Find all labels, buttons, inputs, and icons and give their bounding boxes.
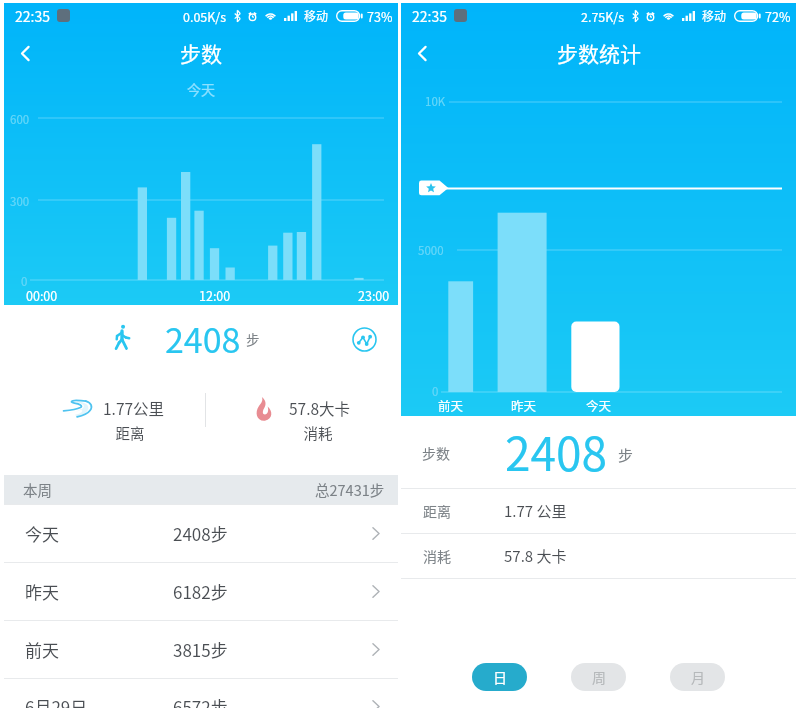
staticText: 2408: [505, 418, 608, 485]
staticText: 6月29日: [25, 694, 88, 708]
staticText: 1.77 公里: [504, 500, 567, 522]
button[interactable]: 今天: [4, 505, 398, 563]
button[interactable]: Back: [4, 29, 52, 77]
button[interactable]: 前天: [4, 621, 398, 679]
staticText: 2.75K/s: [581, 7, 625, 25]
staticText: 总27431步: [315, 479, 385, 500]
staticText: 步: [618, 444, 634, 466]
staticText: 消耗: [252, 422, 384, 443]
staticText: 00:00: [26, 286, 58, 304]
staticText: 前天: [25, 637, 59, 662]
staticText: 今天: [586, 396, 612, 414]
staticText: 本周: [23, 479, 52, 500]
staticText: 3815步: [173, 637, 228, 662]
staticText: 10K: [425, 93, 446, 110]
staticText: 距离: [423, 501, 451, 521]
staticText: 月: [691, 667, 705, 687]
staticText: 0: [21, 273, 28, 290]
button[interactable]: 月: [670, 663, 725, 691]
staticText: 0: [432, 383, 439, 400]
staticText: 步: [246, 329, 260, 349]
staticText: 2408步: [173, 521, 228, 546]
staticText: 前天: [438, 396, 464, 414]
staticText: 今天: [25, 521, 59, 546]
staticText: 6182步: [173, 579, 228, 604]
button[interactable]: Statistics: [343, 318, 385, 360]
staticText: 2408: [165, 314, 241, 363]
staticText: 日: [493, 667, 507, 687]
staticText: 今天: [4, 79, 398, 99]
staticText: 73%: [367, 7, 393, 25]
staticText: 昨天: [25, 579, 59, 604]
staticText: 1.77公里: [103, 397, 165, 419]
staticText: 57.8大卡: [289, 397, 351, 419]
staticText: 移动: [702, 7, 727, 24]
staticText: 57.8 大卡: [504, 545, 567, 567]
staticText: 步数: [422, 443, 450, 463]
staticText: 步数: [180, 38, 222, 68]
staticText: 72%: [765, 7, 791, 25]
staticText: 移动: [304, 7, 329, 24]
staticText: 步数统计: [557, 38, 641, 68]
button[interactable]: Back: [401, 29, 449, 77]
staticText: 23:00: [358, 286, 390, 304]
staticText: 300: [10, 193, 30, 210]
staticText: 0.05K/s: [183, 7, 227, 25]
button[interactable]: 周: [571, 663, 626, 691]
staticText: 距离: [64, 422, 196, 443]
staticText: 600: [10, 111, 30, 128]
staticText: 22:35: [412, 6, 447, 26]
button[interactable]: 日: [472, 663, 527, 691]
staticText: 6572步: [173, 694, 228, 708]
staticText: 12:00: [199, 286, 231, 304]
button[interactable]: 6月29日: [4, 678, 398, 708]
staticText: 消耗: [423, 546, 451, 566]
staticText: 22:35: [15, 6, 50, 26]
button[interactable]: 昨天: [4, 563, 398, 621]
staticText: 周: [592, 667, 606, 687]
staticText: 5000: [418, 242, 444, 259]
staticText: 昨天: [511, 396, 537, 414]
